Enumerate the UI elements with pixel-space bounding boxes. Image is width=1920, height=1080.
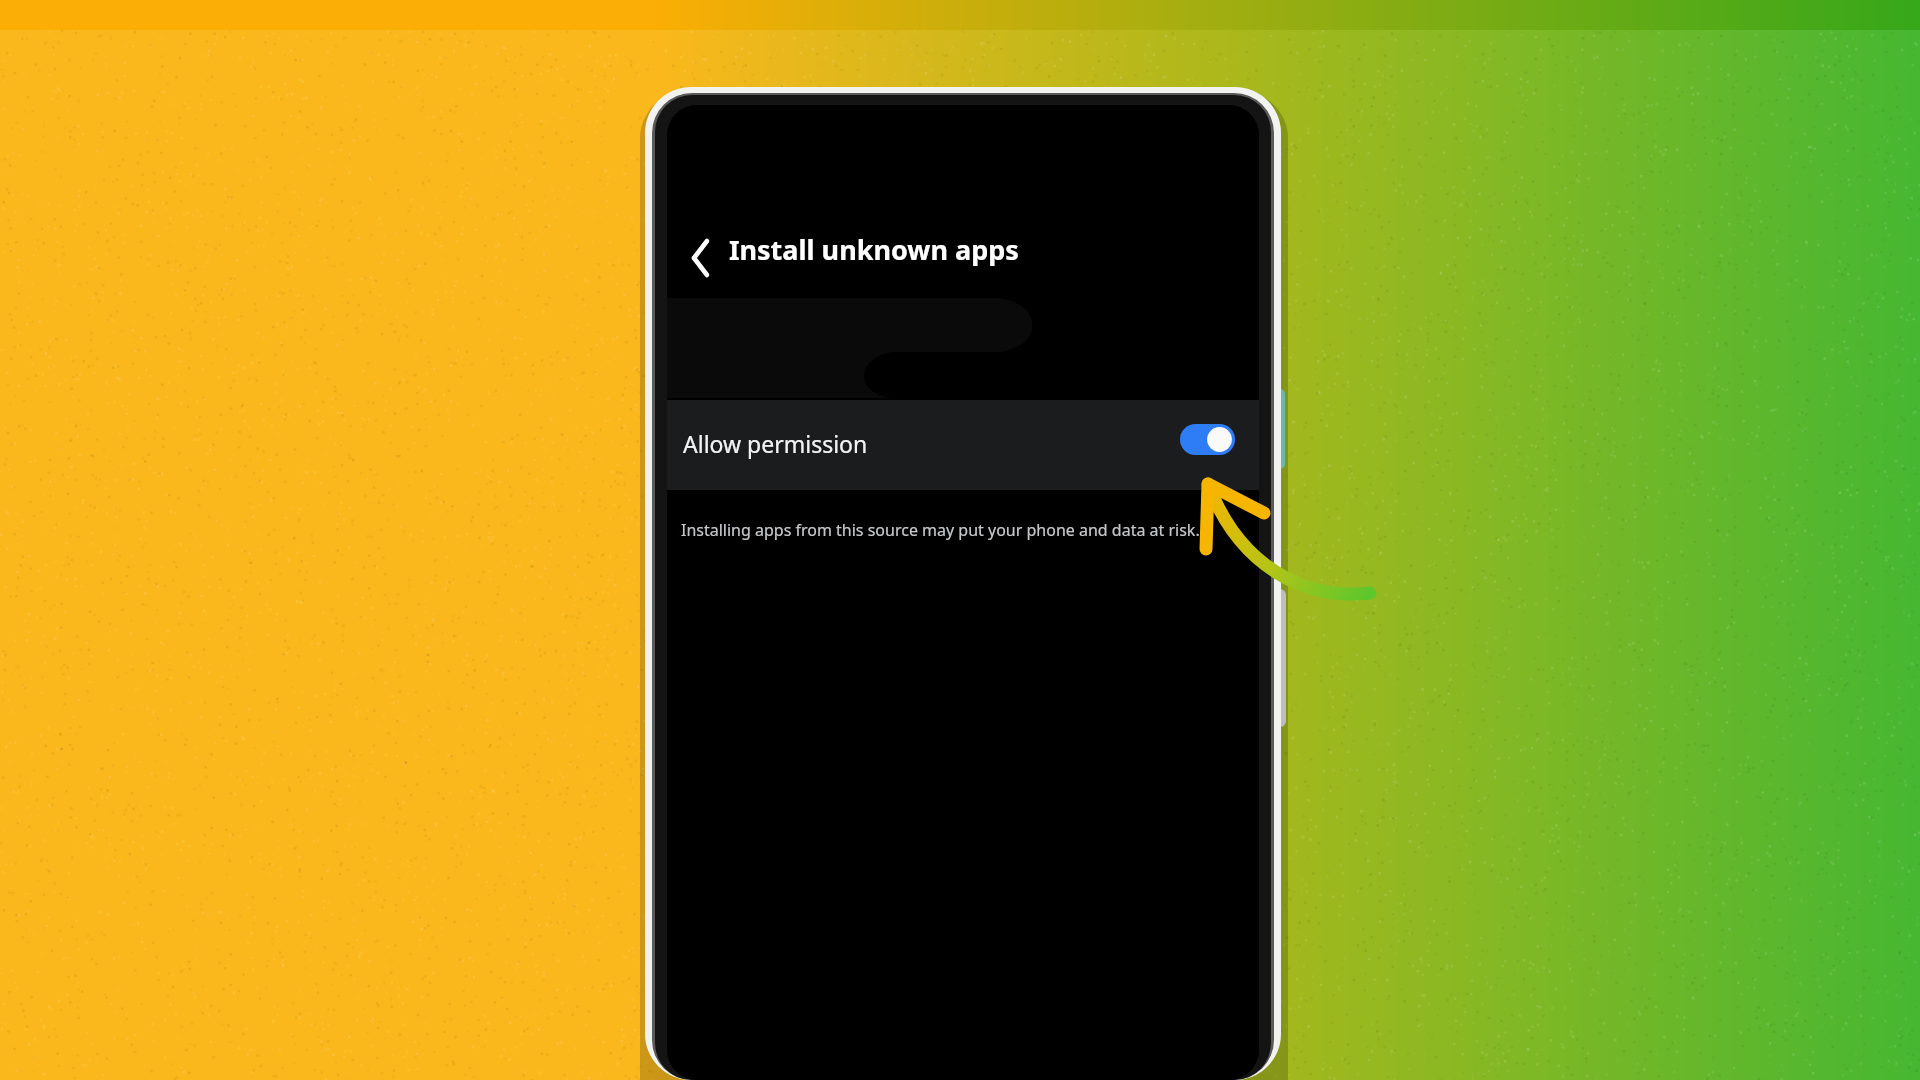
- button[interactable]: Back: [672, 230, 728, 286]
- staticText: Install unknown apps: [729, 231, 1019, 268]
- staticText: Allow permission: [683, 428, 868, 459]
- staticText: Installing apps from this source may put…: [681, 519, 1200, 541]
- button[interactable]: Allow permission: [667, 400, 1259, 490]
